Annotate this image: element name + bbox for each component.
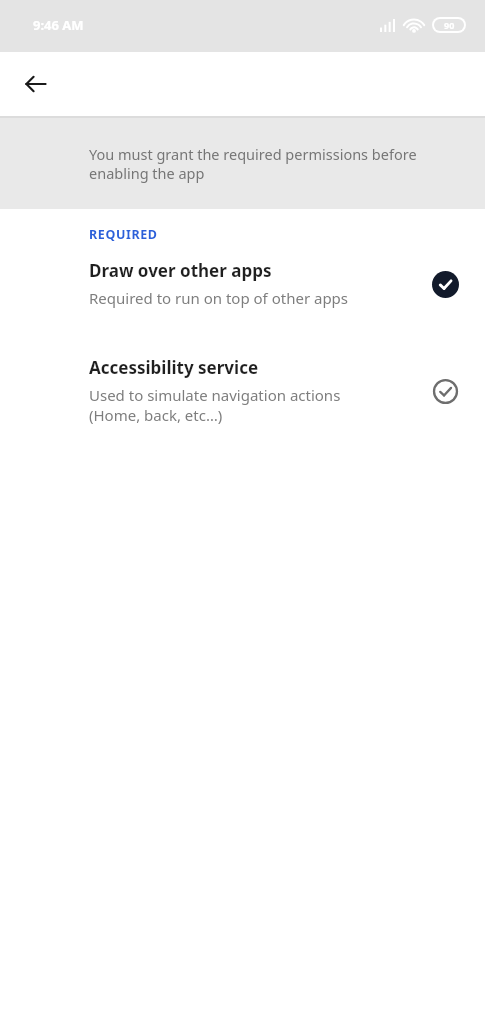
staticText: Draw over other apps bbox=[89, 259, 272, 282]
staticText: Accessibility service bbox=[89, 356, 259, 379]
button[interactable]: Accessibility service bbox=[0, 356, 485, 425]
staticText: 9:46 AM bbox=[33, 16, 84, 34]
button[interactable]: Grant permission bbox=[425, 371, 465, 411]
button[interactable]: Permission granted bbox=[425, 264, 465, 304]
button[interactable]: Back bbox=[12, 60, 60, 108]
button[interactable]: Draw over other apps bbox=[0, 259, 485, 308]
staticText: REQUIRED bbox=[89, 226, 158, 243]
staticText: You must grant the required permissions … bbox=[89, 144, 417, 183]
staticText: Required to run on top of other apps bbox=[89, 288, 349, 308]
staticText: Used to simulate navigation actions (Hom… bbox=[89, 385, 341, 425]
staticText: 90 bbox=[444, 19, 455, 31]
